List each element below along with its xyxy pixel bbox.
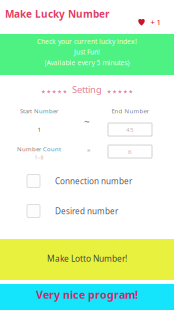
staticText: 45 — [126, 125, 134, 134]
staticText: Number Count — [17, 145, 61, 153]
staticText: ~ — [84, 115, 90, 129]
button[interactable]: Check your current lucky index! — [0, 34, 174, 75]
staticText: (Available every 5 minutes) — [44, 58, 129, 67]
staticText: Check your current lucky index! — [37, 37, 137, 46]
staticText: Setting — [72, 83, 102, 96]
button[interactable]: Connection number — [27, 171, 174, 191]
button[interactable]: 45 — [108, 123, 152, 136]
staticText: Just Fun! — [74, 47, 100, 57]
button[interactable]: 1 — [17, 123, 61, 136]
staticText: 1~8 — [34, 154, 43, 161]
staticText: = — [87, 146, 91, 154]
staticText: + 1 — [150, 17, 160, 27]
staticText: Very nice program! — [36, 287, 138, 302]
staticText: Connection number — [55, 175, 132, 187]
staticText: Make Lotto Number! — [47, 253, 127, 264]
button[interactable]: Lucky points — [134, 17, 164, 27]
staticText: Make Lucky Number — [5, 7, 109, 21]
staticText: Start Number — [20, 107, 58, 115]
button[interactable]: 6 — [108, 145, 152, 158]
staticText: End Number — [111, 107, 148, 115]
button[interactable]: Desired number — [27, 201, 174, 221]
button[interactable]: Make Lotto Number! — [0, 239, 174, 280]
staticText: Desired number — [55, 205, 118, 217]
staticText: 1 — [37, 125, 40, 134]
staticText: 6 — [128, 147, 132, 156]
